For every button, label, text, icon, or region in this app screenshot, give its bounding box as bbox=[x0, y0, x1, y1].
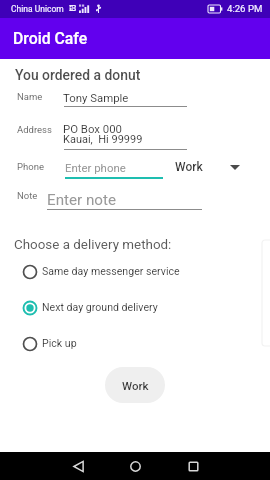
staticText: 4:26 PM bbox=[227, 3, 263, 14]
staticText: Note bbox=[17, 190, 38, 201]
button[interactable]: Work bbox=[172, 158, 244, 176]
button[interactable]: Back bbox=[62, 452, 94, 480]
button[interactable]: Home bbox=[119, 452, 151, 480]
staticText: Enter note bbox=[47, 191, 117, 209]
staticText: Address bbox=[17, 124, 52, 135]
staticText: Next day ground delivery bbox=[42, 301, 158, 313]
staticText: Phone bbox=[17, 161, 44, 172]
button[interactable]: Droid Cafe bbox=[0, 18, 270, 59]
staticText: Work bbox=[122, 379, 149, 392]
staticText: Droid Cafe bbox=[13, 29, 88, 48]
staticText: China Unicom bbox=[11, 4, 64, 14]
staticText: Work bbox=[175, 160, 203, 174]
button[interactable]: Recent apps bbox=[177, 452, 209, 480]
staticText: Tony Sample bbox=[63, 91, 129, 104]
staticText: Name bbox=[17, 91, 43, 102]
staticText: Choose a delivery method: bbox=[14, 237, 172, 253]
staticText: PO Box 000 bbox=[63, 122, 123, 135]
button[interactable]: Pick up bbox=[0, 327, 270, 361]
staticText: Enter phone bbox=[65, 161, 126, 174]
button[interactable]: Same day messenger service bbox=[0, 255, 270, 289]
button[interactable]: Work bbox=[105, 367, 165, 403]
staticText: Kauai, Hi 99999 bbox=[63, 133, 143, 146]
staticText: Pick up bbox=[42, 337, 77, 349]
button[interactable]: Next day ground delivery bbox=[0, 291, 270, 325]
staticText: HD bbox=[69, 5, 76, 11]
staticText: Same day messenger service bbox=[42, 265, 180, 277]
staticText: You ordered a donut bbox=[15, 67, 141, 83]
